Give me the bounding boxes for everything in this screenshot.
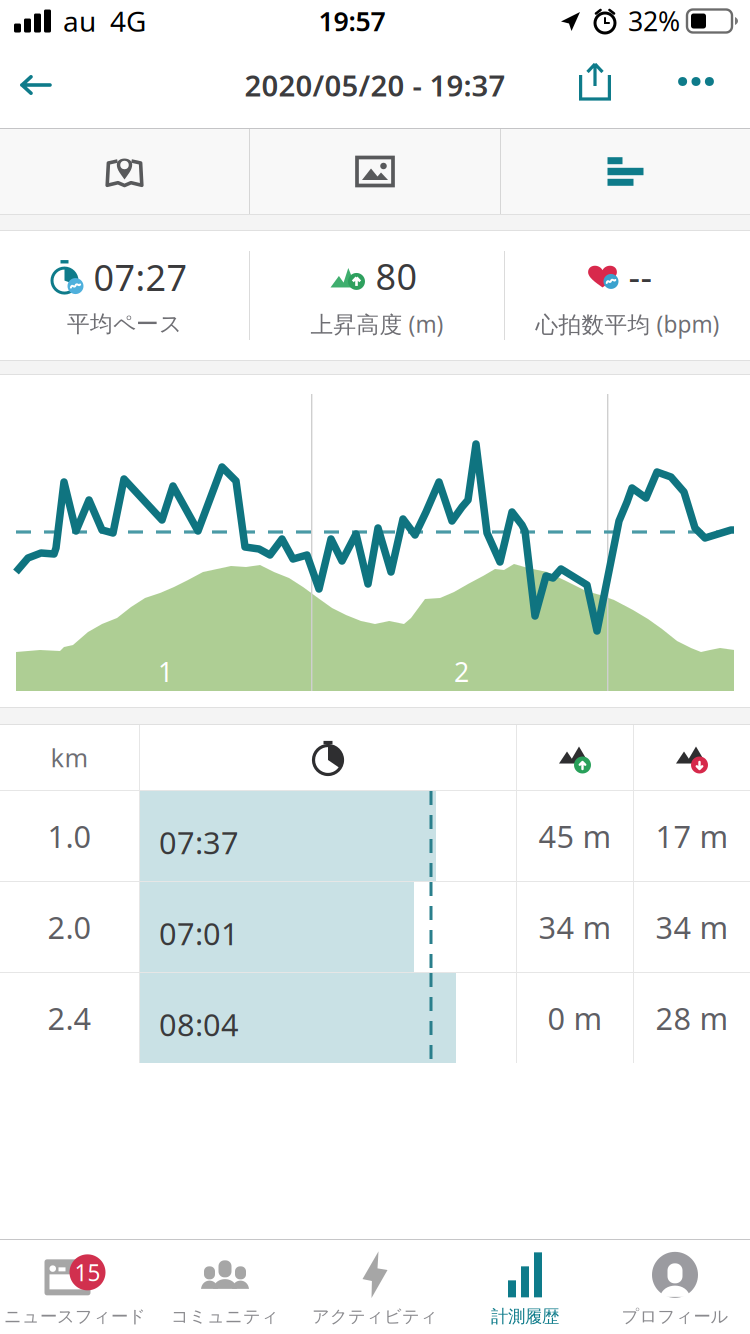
staticText: 32% <box>628 3 680 39</box>
staticText: km <box>50 741 88 774</box>
button[interactable]: Splits <box>501 129 750 214</box>
button[interactable]: アクティビティ <box>300 1240 450 1334</box>
staticText: 平均ペース <box>67 310 182 338</box>
staticText: ニュースフィード <box>4 1306 146 1327</box>
staticText: 心拍数平均 (bpm) <box>535 309 719 339</box>
button[interactable]: Map <box>0 129 249 214</box>
button[interactable]: コミュニティ <box>150 1240 300 1334</box>
button[interactable]: 15 <box>0 1240 150 1334</box>
staticText: 34 m <box>538 907 611 947</box>
staticText: 1.0 <box>47 816 91 856</box>
staticText: 07:37 <box>159 822 239 863</box>
staticText: 2020/05/20 - 19:37 <box>244 65 505 104</box>
staticText: 28 m <box>655 998 728 1038</box>
staticText: 15 <box>74 1257 100 1287</box>
staticText: 17 m <box>655 816 728 856</box>
staticText: -- <box>628 252 652 300</box>
staticText: 2.4 <box>47 998 91 1038</box>
staticText: 4G <box>110 2 146 40</box>
staticText: 08:04 <box>159 1004 239 1045</box>
staticText: 1 <box>158 654 173 689</box>
button[interactable]: 計測履歴 <box>450 1240 600 1334</box>
button[interactable]: More <box>648 42 750 128</box>
staticText: 上昇高度 (m) <box>310 309 443 339</box>
button[interactable]: プロフィール <box>600 1240 750 1334</box>
staticText: アクティビティ <box>312 1306 438 1327</box>
staticText: 45 m <box>538 816 611 856</box>
staticText: 34 m <box>655 907 728 947</box>
staticText: 計測履歴 <box>491 1306 559 1327</box>
staticText: 0 m <box>547 998 602 1038</box>
staticText: 2.0 <box>47 907 91 947</box>
staticText: au <box>63 2 96 40</box>
staticText: 07:01 <box>159 913 239 954</box>
button[interactable]: Share <box>559 42 648 128</box>
staticText: プロフィール <box>621 1306 728 1327</box>
button[interactable]: Back <box>0 42 76 128</box>
staticText: 07:27 <box>93 253 187 301</box>
staticText: コミュニティ <box>171 1306 279 1327</box>
button[interactable]: Photos <box>250 129 500 214</box>
staticText: 19:57 <box>318 3 385 39</box>
staticText: 2 <box>454 654 469 689</box>
staticText: 80 <box>375 252 417 300</box>
